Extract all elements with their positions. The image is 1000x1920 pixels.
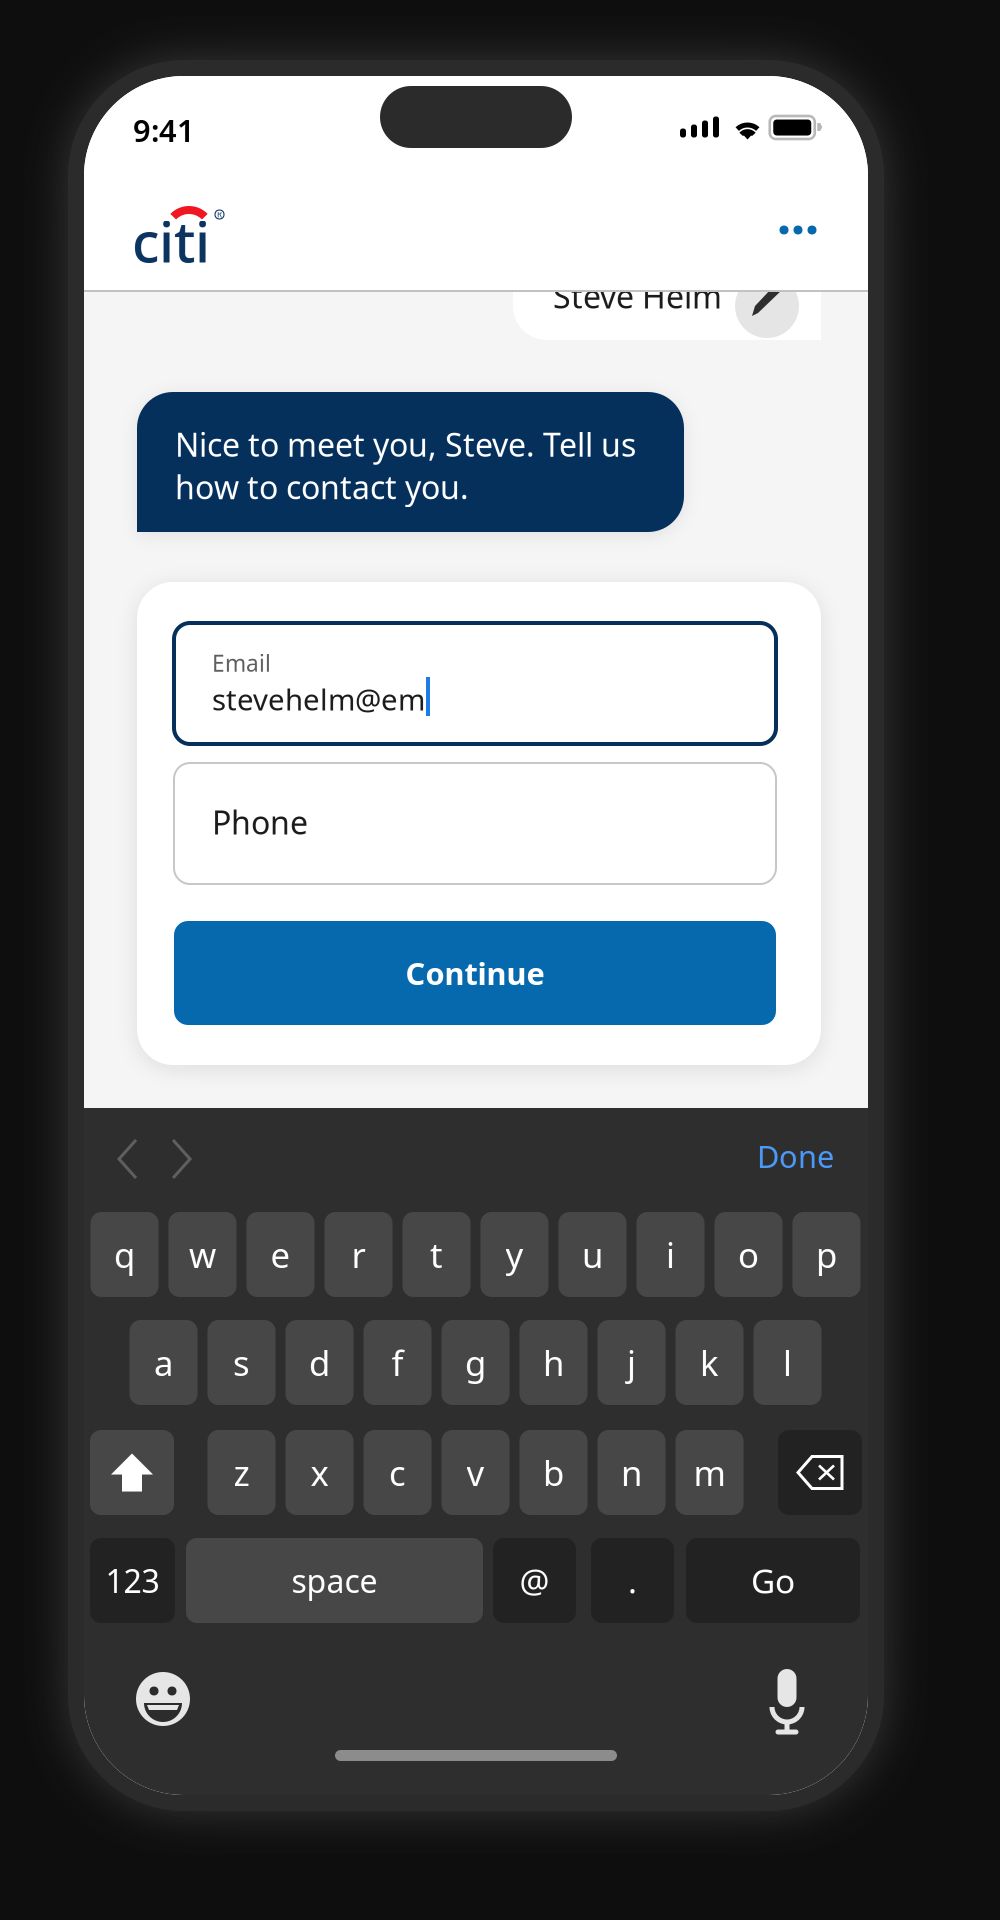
button[interactable]: Dictation — [767, 1670, 807, 1728]
button[interactable]: More — [743, 183, 853, 277]
staticText: 9:41 — [133, 110, 195, 150]
staticText: l — [783, 1339, 792, 1385]
button[interactable]: Delete — [778, 1430, 862, 1515]
button[interactable]: f — [363, 1320, 431, 1405]
button[interactable]: b — [519, 1430, 587, 1515]
staticText: y — [505, 1231, 523, 1277]
staticText: Email — [212, 648, 271, 678]
staticText: z — [233, 1449, 249, 1495]
staticText: f — [391, 1339, 403, 1385]
staticText: c — [389, 1449, 406, 1495]
button[interactable]: . — [591, 1538, 674, 1623]
staticText: j — [627, 1339, 636, 1385]
button[interactable]: c — [363, 1430, 431, 1515]
staticText: Go — [751, 1558, 795, 1603]
staticText: r — [351, 1231, 365, 1277]
staticText: v — [466, 1449, 484, 1495]
button[interactable]: d — [285, 1320, 353, 1405]
button[interactable]: e — [246, 1212, 314, 1297]
button[interactable]: m — [675, 1430, 743, 1515]
button[interactable]: 123 — [90, 1538, 175, 1623]
staticText: m — [693, 1449, 725, 1495]
staticText: Done — [757, 1136, 834, 1176]
staticText: o — [738, 1231, 759, 1277]
button[interactable]: l — [753, 1320, 821, 1405]
staticText: s — [233, 1339, 250, 1385]
button[interactable]: Done — [704, 1126, 834, 1186]
staticText: Phone — [212, 801, 308, 843]
staticText: n — [621, 1449, 642, 1495]
staticText: d — [309, 1339, 330, 1385]
staticText: 123 — [105, 1559, 159, 1602]
staticText: citi — [132, 204, 210, 278]
button[interactable]: Continue — [174, 921, 776, 1025]
button[interactable]: a — [129, 1320, 197, 1405]
staticText: a — [154, 1339, 173, 1385]
button[interactable]: z — [207, 1430, 275, 1515]
staticText: Steve Helm — [553, 275, 722, 317]
button[interactable]: o — [714, 1212, 782, 1297]
button[interactable]: v — [441, 1430, 509, 1515]
staticText: b — [543, 1449, 564, 1495]
button[interactable]: Previous or next field — [114, 1126, 284, 1192]
staticText: p — [816, 1231, 837, 1277]
staticText: @ — [519, 1558, 549, 1603]
staticText: R — [217, 209, 222, 220]
button[interactable]: j — [597, 1320, 665, 1405]
button[interactable]: g — [441, 1320, 509, 1405]
button[interactable]: @ — [493, 1538, 576, 1623]
button[interactable]: Emoji — [135, 1671, 191, 1727]
staticText: e — [270, 1231, 290, 1277]
staticText: g — [465, 1339, 486, 1385]
button[interactable]: n — [597, 1430, 665, 1515]
staticText: x — [310, 1449, 328, 1495]
staticText: i — [666, 1231, 675, 1277]
button[interactable]: r — [324, 1212, 392, 1297]
button[interactable]: t — [402, 1212, 470, 1297]
button[interactable]: Shift — [90, 1430, 174, 1515]
staticText: u — [582, 1231, 603, 1277]
button[interactable]: y — [480, 1212, 548, 1297]
button[interactable]: k — [675, 1320, 743, 1405]
button[interactable]: h — [519, 1320, 587, 1405]
staticText: t — [430, 1231, 443, 1277]
staticText: w — [189, 1231, 216, 1277]
button[interactable]: Steve Helm — [513, 234, 821, 340]
button[interactable]: s — [207, 1320, 275, 1405]
button[interactable]: Go — [686, 1538, 860, 1623]
button[interactable]: q — [90, 1212, 158, 1297]
staticText: space — [291, 1559, 377, 1602]
staticText: h — [543, 1339, 564, 1385]
staticText: k — [700, 1339, 719, 1385]
button[interactable]: x — [285, 1430, 353, 1515]
staticText: Nice to meet you, Steve. Tell us how to … — [175, 423, 636, 508]
staticText: . — [628, 1558, 637, 1603]
button[interactable]: w — [168, 1212, 236, 1297]
staticText: q — [114, 1231, 135, 1277]
button[interactable]: space — [186, 1538, 483, 1623]
button[interactable]: p — [792, 1212, 860, 1297]
button[interactable]: i — [636, 1212, 704, 1297]
button[interactable]: u — [558, 1212, 626, 1297]
staticText: stevehelm@em — [212, 679, 425, 718]
staticText: Continue — [405, 953, 544, 993]
